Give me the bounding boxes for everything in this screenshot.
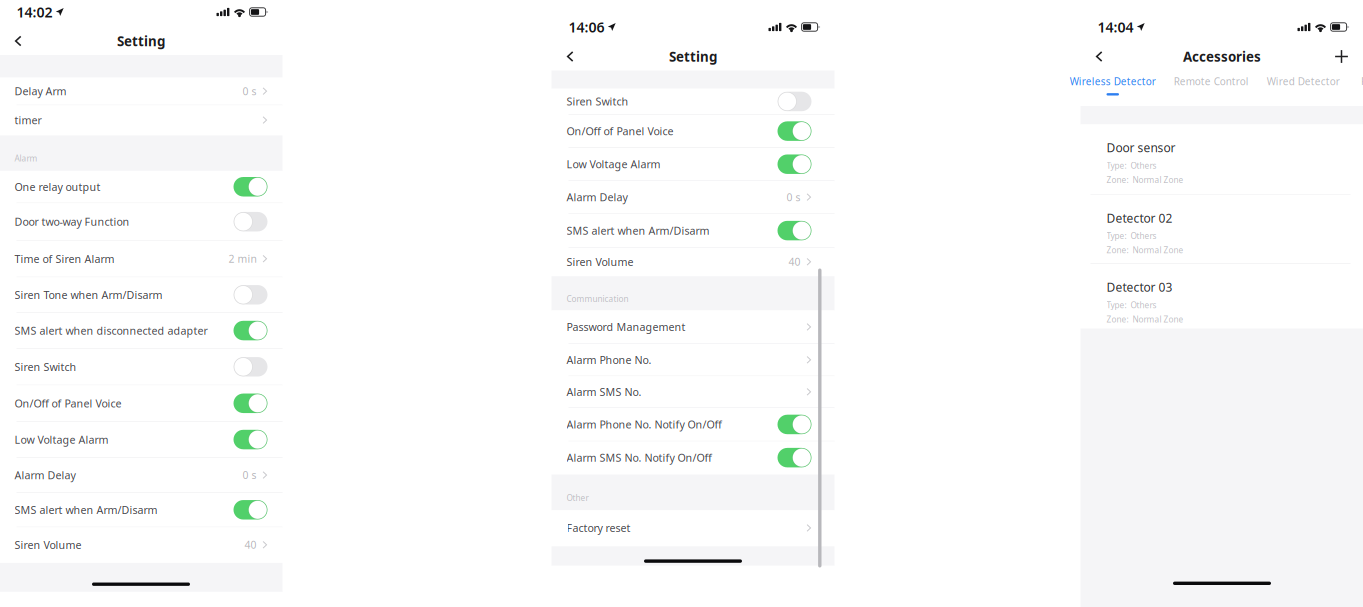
staticText: Other <box>566 492 588 503</box>
staticText: R <box>1361 74 1363 88</box>
staticText: Setting <box>669 47 717 66</box>
staticText: Time of Siren Alarm <box>14 251 114 266</box>
staticText: 14:02 <box>16 2 52 22</box>
staticText: Zone: Normal Zone <box>1106 174 1183 185</box>
staticText: Siren Switch <box>14 359 76 374</box>
staticText: Low Voltage Alarm <box>566 157 660 171</box>
staticText: Zone: Normal Zone <box>1106 314 1183 325</box>
staticText: 14:06 <box>568 17 604 37</box>
staticText: Detector 03 <box>1106 279 1172 295</box>
staticText: Alarm Phone No. <box>566 353 651 367</box>
staticText: Delay Arm <box>14 84 66 98</box>
staticText: 0 s <box>243 84 257 98</box>
button[interactable]: R <box>1358 70 1363 106</box>
staticText: Low Voltage Alarm <box>14 432 108 447</box>
button[interactable]: Wired Detector <box>1267 70 1340 106</box>
button[interactable]: Back <box>1080 42 1126 70</box>
button[interactable]: Door two-way Function <box>0 203 282 241</box>
staticText: Door two-way Function <box>14 214 129 229</box>
staticText: timer <box>14 113 41 127</box>
staticText: One relay output <box>14 179 100 194</box>
staticText: 14:04 <box>1097 17 1133 37</box>
staticText: SMS alert when Arm/Disarm <box>566 223 709 238</box>
staticText: SMS alert when Arm/Disarm <box>14 502 157 517</box>
staticText: Wired Detector <box>1267 74 1340 88</box>
button[interactable]: One relay output <box>0 171 282 203</box>
button[interactable]: Alarm Delay <box>0 458 282 493</box>
button[interactable]: Alarm Delay <box>551 181 834 214</box>
staticText: 0 s <box>243 468 257 482</box>
staticText: Type: Others <box>1106 230 1156 241</box>
button[interactable]: Alarm SMS No. Notify On/Off <box>551 441 834 474</box>
button[interactable]: On/Off of Panel Voice <box>0 385 282 422</box>
button[interactable]: Siren Switch <box>551 89 834 115</box>
button[interactable]: Back <box>551 42 597 70</box>
staticText: 40 <box>789 255 801 269</box>
button[interactable]: Back <box>0 27 45 55</box>
button[interactable]: Detector 03 <box>1080 264 1363 328</box>
staticText: Alarm SMS No. <box>566 385 641 399</box>
staticText: 0 s <box>787 190 801 204</box>
button[interactable]: Siren Tone when Arm/Disarm <box>0 277 282 313</box>
button[interactable]: Wireless Detector <box>1070 70 1156 106</box>
button[interactable]: Remote Control <box>1174 70 1249 106</box>
staticText: SMS alert when disconnected adapter <box>14 323 207 338</box>
staticText: 2 min <box>229 252 257 266</box>
staticText: Siren Switch <box>566 94 628 109</box>
staticText: Factory reset <box>566 521 630 535</box>
button[interactable]: Delay Arm <box>0 78 282 105</box>
staticText: Siren Volume <box>14 537 81 552</box>
staticText: Door sensor <box>1106 139 1175 156</box>
staticText: Setting <box>117 32 165 50</box>
button[interactable]: SMS alert when Arm/Disarm <box>0 493 282 527</box>
staticText: Remote Control <box>1174 74 1249 88</box>
button[interactable]: Siren Volume <box>551 248 834 276</box>
button[interactable]: Siren Switch <box>0 349 282 385</box>
button[interactable]: Siren Volume <box>0 527 282 563</box>
staticText: Type: Others <box>1106 299 1156 311</box>
button[interactable]: Door sensor <box>1080 124 1363 195</box>
button[interactable]: On/Off of Panel Voice <box>551 115 834 148</box>
staticText: Alarm Delay <box>566 190 627 204</box>
staticText: Alarm Phone No. Notify On/Off <box>566 417 721 432</box>
staticText: Detector 02 <box>1106 210 1172 226</box>
button[interactable]: SMS alert when disconnected adapter <box>0 313 282 349</box>
staticText: Communication <box>566 293 628 304</box>
staticText: Accessories <box>1183 47 1261 66</box>
button[interactable]: Factory reset <box>551 510 834 546</box>
staticText: Alarm <box>14 153 37 164</box>
staticText: Zone: Normal Zone <box>1106 244 1183 256</box>
staticText: On/Off of Panel Voice <box>14 396 121 410</box>
button[interactable]: SMS alert when Arm/Disarm <box>551 214 834 248</box>
button[interactable]: Password Management <box>551 310 834 344</box>
staticText: Type: Others <box>1106 160 1156 171</box>
staticText: Password Management <box>566 320 685 334</box>
staticText: Wireless Detector <box>1070 74 1156 88</box>
staticText: Siren Volume <box>566 254 633 269</box>
button[interactable]: timer <box>0 105 282 135</box>
button[interactable]: Alarm Phone No. <box>551 344 834 376</box>
staticText: Alarm SMS No. Notify On/Off <box>566 450 711 465</box>
staticText: 40 <box>245 538 257 552</box>
button[interactable]: Time of Siren Alarm <box>0 241 282 277</box>
button[interactable]: Alarm SMS No. <box>551 376 834 408</box>
staticText: Siren Tone when Arm/Disarm <box>14 287 162 302</box>
button[interactable]: Low Voltage Alarm <box>0 422 282 458</box>
button[interactable]: Add <box>1316 42 1363 70</box>
staticText: Alarm Delay <box>14 468 75 482</box>
button[interactable]: Alarm Phone No. Notify On/Off <box>551 408 834 441</box>
button[interactable]: Low Voltage Alarm <box>551 148 834 181</box>
staticText: On/Off of Panel Voice <box>566 124 673 138</box>
button[interactable]: Detector 02 <box>1080 195 1363 264</box>
